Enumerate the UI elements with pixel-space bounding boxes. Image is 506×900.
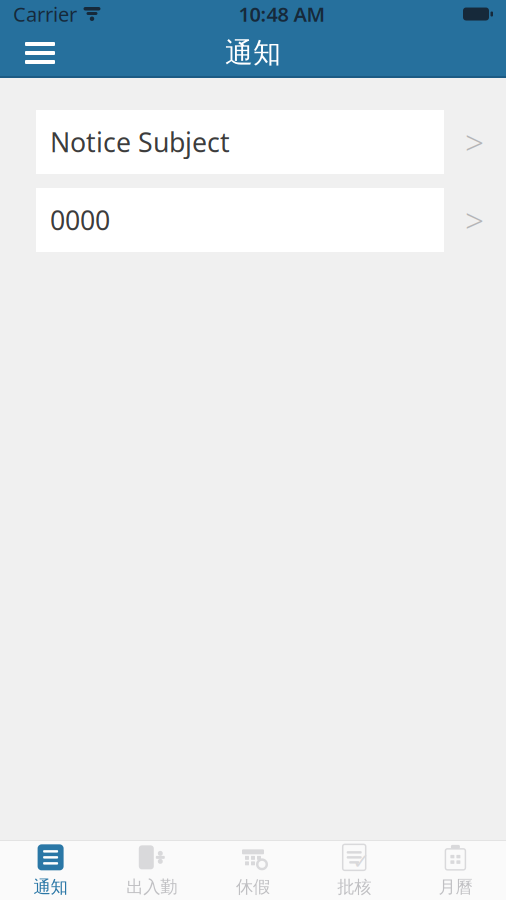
staticText: ✓ — [352, 849, 370, 873]
staticText: 出入勤 — [126, 876, 177, 898]
button[interactable]: Notice Subject — [36, 110, 506, 174]
button[interactable]: 休假 — [202, 840, 304, 900]
staticText: 休假 — [236, 876, 270, 898]
staticText: 批核 — [337, 876, 371, 898]
staticText: > — [465, 198, 484, 242]
staticText: 0000 — [50, 202, 110, 238]
button[interactable]: ✓ — [304, 840, 405, 900]
staticText: Carrier — [13, 1, 77, 27]
staticText: > — [465, 120, 484, 164]
staticText: 月曆 — [438, 876, 472, 898]
staticText: 通知 — [225, 36, 281, 70]
button[interactable]: 通知 — [0, 840, 101, 900]
button[interactable]: 0000 — [36, 188, 506, 252]
staticText: Notice Subject — [50, 124, 230, 160]
button[interactable]: 月曆 — [405, 840, 506, 900]
button[interactable]: Menu — [14, 30, 66, 76]
staticText: 通知 — [34, 876, 68, 898]
button[interactable]: 出入勤 — [101, 840, 202, 900]
staticText: 10:48 AM — [238, 1, 325, 27]
